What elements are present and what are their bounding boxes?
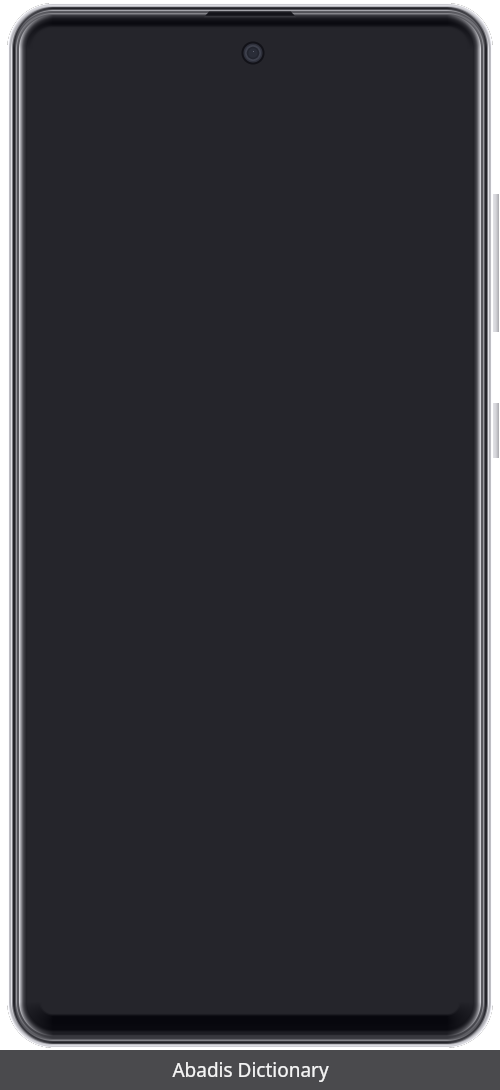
staticText: Abadis Dictionary — [172, 1057, 329, 1083]
button[interactable]: Abadis Dictionary — [0, 1050, 500, 1090]
